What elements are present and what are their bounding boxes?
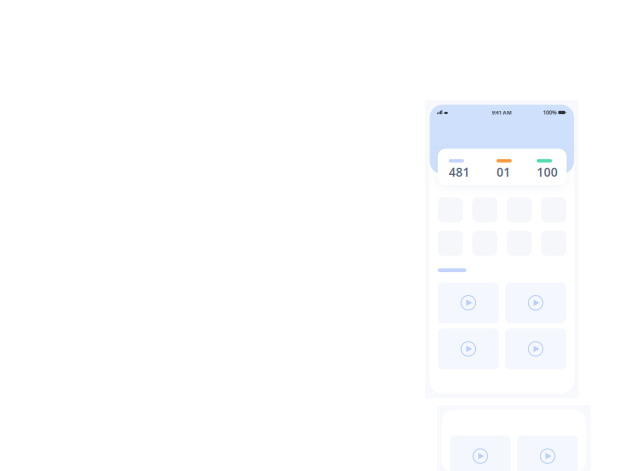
staticText: 100% [543, 109, 557, 116]
staticText: 01 [496, 164, 510, 180]
staticText: 9:41 AM [492, 109, 512, 116]
button[interactable]: Play video [505, 282, 566, 323]
button[interactable]: Play video [450, 436, 511, 471]
button[interactable]: Play video [438, 328, 499, 369]
button[interactable]: Play video [438, 282, 499, 323]
staticText: 100 [537, 164, 558, 180]
button[interactable]: Play video [505, 328, 566, 369]
staticText: 481 [449, 164, 470, 180]
button[interactable]: Play video [517, 436, 578, 471]
